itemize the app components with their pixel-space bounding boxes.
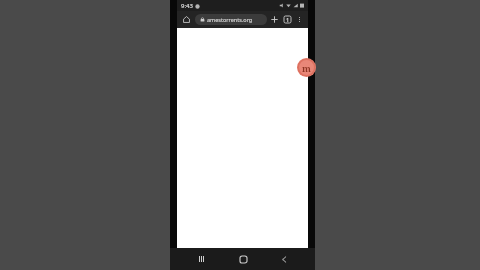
button[interactable]: Home <box>180 13 193 26</box>
button[interactable]: Recent apps <box>191 249 211 269</box>
button[interactable]: New tab <box>268 13 281 26</box>
staticText: 1 <box>286 17 289 23</box>
staticText: 9:43 <box>181 2 193 10</box>
staticText: amestorrents.org <box>207 16 253 23</box>
staticText: m <box>302 62 311 74</box>
button[interactable]: Back <box>274 249 294 269</box>
button[interactable]: amestorrents.org <box>195 14 267 25</box>
button[interactable]: Site logo <box>297 58 316 77</box>
button[interactable]: Tabs <box>281 13 294 26</box>
button[interactable]: Home <box>233 249 253 269</box>
button[interactable]: More options <box>294 14 305 25</box>
